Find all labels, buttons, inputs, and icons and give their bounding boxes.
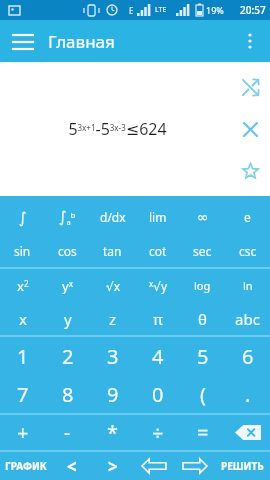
button[interactable]: = — [180, 415, 225, 450]
staticText: E — [129, 5, 134, 16]
button[interactable]: 2 — [45, 337, 90, 375]
button[interactable]: . — [225, 375, 270, 413]
staticText: + — [17, 419, 29, 446]
staticText: 19% — [206, 4, 224, 16]
staticText: d/dx — [100, 209, 126, 225]
staticText: sin — [14, 243, 31, 259]
button[interactable]: yx — [45, 269, 90, 302]
button[interactable]: ÷ — [135, 415, 180, 450]
button[interactable]: cot — [135, 234, 180, 267]
staticText: 5 — [197, 343, 209, 370]
staticText: 53x+1-53x-3≤624 — [68, 118, 167, 140]
button[interactable]: 8 — [45, 375, 90, 413]
staticText: LTE — [155, 5, 167, 15]
button[interactable]: log — [180, 269, 225, 302]
staticText: < — [67, 455, 77, 478]
staticText: ∫ — [19, 209, 27, 226]
staticText: ∫ab — [59, 208, 76, 227]
staticText: ÷ — [152, 419, 164, 446]
staticText: - — [64, 419, 71, 446]
staticText: 0 — [152, 381, 164, 408]
button[interactable]: More options — [234, 25, 266, 57]
button[interactable]: Undo — [133, 452, 174, 480]
button[interactable]: Backspace — [225, 415, 270, 450]
staticText: sec — [193, 243, 212, 259]
button[interactable]: z — [90, 302, 135, 335]
staticText: cot — [149, 243, 167, 259]
button[interactable]: x2 — [0, 269, 45, 302]
button[interactable]: √x — [90, 269, 135, 302]
staticText: e — [244, 209, 251, 225]
button[interactable]: - — [45, 415, 90, 450]
button[interactable]: Redo — [174, 452, 215, 480]
button[interactable]: sin — [0, 234, 45, 267]
button[interactable]: РЕШИТЬ — [215, 452, 270, 480]
button[interactable]: 6 — [225, 337, 270, 375]
button[interactable]: 5 — [180, 337, 225, 375]
staticText: x2 — [17, 277, 29, 295]
button[interactable]: Move cursor left — [51, 452, 92, 480]
staticText: tan — [103, 243, 122, 259]
button[interactable]: ∫ — [0, 200, 45, 234]
button[interactable]: π — [135, 302, 180, 335]
staticText: yx — [62, 277, 73, 295]
button[interactable]: csc — [225, 234, 270, 267]
staticText: csc — [239, 243, 257, 259]
button[interactable]: x√y — [135, 269, 180, 302]
staticText: x√y — [149, 278, 167, 294]
button[interactable]: Clear — [233, 112, 267, 146]
button[interactable]: lim — [135, 200, 180, 234]
staticText: θ — [198, 309, 207, 329]
button[interactable]: Add to favourites — [233, 154, 267, 188]
button[interactable]: 3 — [90, 337, 135, 375]
staticText: 6 — [242, 343, 254, 370]
staticText: log — [194, 278, 211, 293]
staticText: 8 — [62, 381, 74, 408]
staticText: y — [64, 309, 72, 329]
button[interactable]: + — [0, 415, 45, 450]
button[interactable]: ln — [225, 269, 270, 302]
button[interactable]: y — [45, 302, 90, 335]
staticText: ( — [200, 381, 206, 408]
button[interactable]: abc — [225, 302, 270, 335]
staticText: x — [19, 309, 27, 329]
button[interactable]: 9 — [90, 375, 135, 413]
button[interactable]: x — [0, 302, 45, 335]
button[interactable]: sec — [180, 234, 225, 267]
staticText: lim — [149, 209, 167, 225]
staticText: 2 — [62, 343, 74, 370]
staticText: cos — [58, 243, 77, 259]
button[interactable]: θ — [180, 302, 225, 335]
button[interactable]: ГРАФИК — [0, 452, 51, 480]
button[interactable]: * — [90, 415, 135, 450]
button[interactable]: 7 — [0, 375, 45, 413]
button[interactable]: Move cursor right — [92, 452, 133, 480]
staticText: z — [109, 309, 117, 329]
button[interactable]: ( — [180, 375, 225, 413]
button[interactable]: 4 — [135, 337, 180, 375]
staticText: * — [107, 419, 119, 446]
staticText: РЕШИТЬ — [221, 459, 264, 473]
staticText: 9 — [107, 381, 119, 408]
button[interactable]: d/dx — [90, 200, 135, 234]
staticText: 20:57 — [240, 3, 266, 17]
staticText: Главная — [48, 30, 115, 53]
staticText: π — [153, 309, 163, 329]
staticText: = — [197, 419, 209, 446]
button[interactable]: ∫ab — [45, 200, 90, 234]
button[interactable]: 0 — [135, 375, 180, 413]
staticText: ГРАФИК — [5, 459, 47, 473]
staticText: . — [245, 381, 251, 408]
staticText: 7 — [17, 381, 29, 408]
button[interactable]: 1 — [0, 337, 45, 375]
button[interactable]: tan — [90, 234, 135, 267]
button[interactable]: Open navigation menu — [6, 24, 40, 58]
button[interactable]: cos — [45, 234, 90, 267]
staticText: 3 — [107, 343, 119, 370]
staticText: abc — [235, 309, 260, 329]
button[interactable]: ∞ — [180, 200, 225, 234]
staticText: ∞ — [197, 209, 209, 225]
staticText: 4 — [152, 343, 164, 370]
button[interactable]: e — [225, 200, 270, 234]
button[interactable]: Shuffle — [233, 70, 267, 104]
